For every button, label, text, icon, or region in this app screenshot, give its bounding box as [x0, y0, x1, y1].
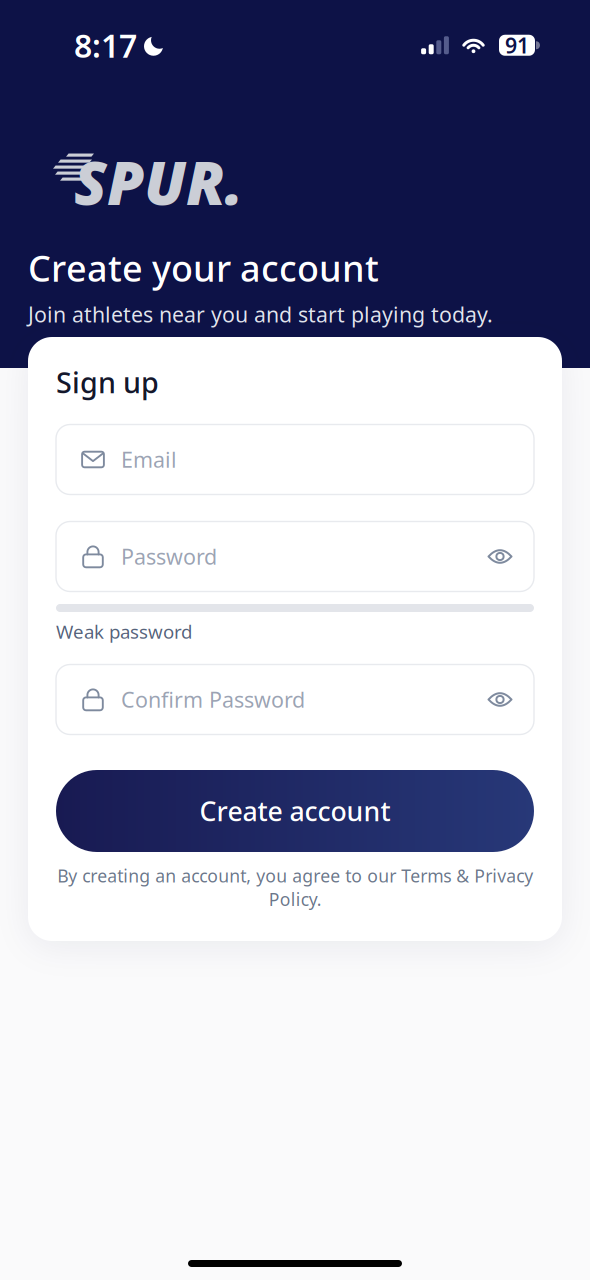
staticText: 8:17: [74, 24, 137, 66]
staticText: Create your account: [28, 244, 379, 292]
staticText: Weak password: [56, 619, 192, 644]
staticText: Email: [121, 445, 177, 474]
staticText: By creating an account, you agree to our…: [57, 864, 533, 911]
staticText: Confirm Password: [121, 685, 305, 714]
button[interactable]: Create account: [56, 770, 534, 852]
staticText: SPUR.: [74, 142, 243, 222]
staticText: Sign up: [56, 363, 159, 401]
staticText: Password: [121, 542, 217, 571]
button[interactable]: Show password: [483, 682, 517, 716]
staticText: Create account: [199, 793, 390, 829]
staticText: Join athletes near you and start playing…: [28, 300, 493, 328]
button[interactable]: Show password: [483, 539, 517, 573]
staticText: 91: [505, 31, 529, 59]
